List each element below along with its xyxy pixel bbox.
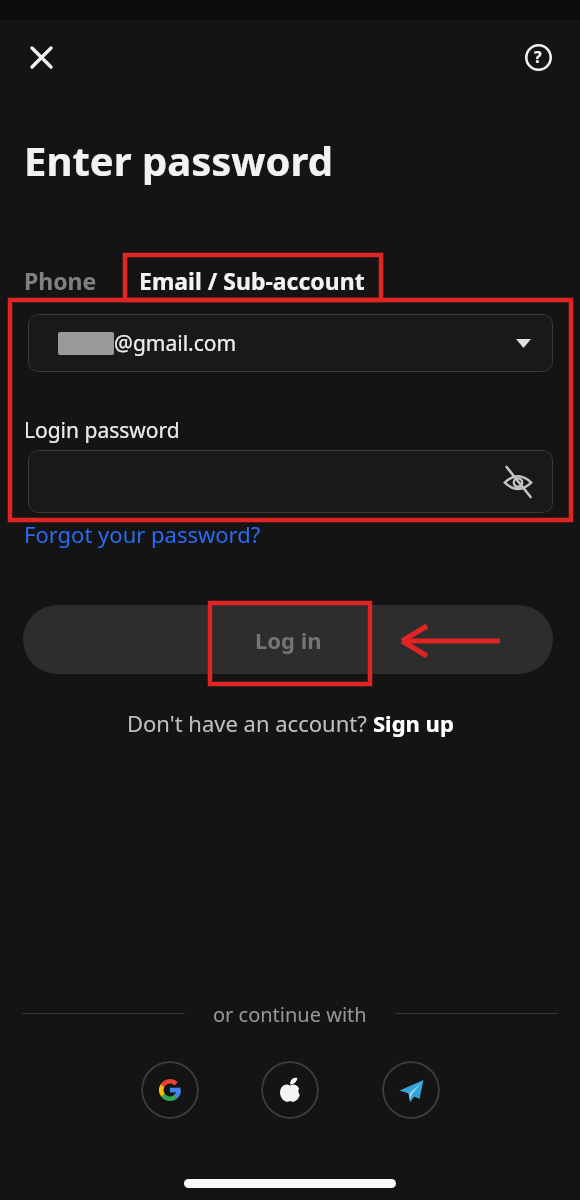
- button[interactable]: [141, 1061, 199, 1119]
- staticText: Enter password: [24, 133, 333, 187]
- staticText: @gmail.com: [114, 329, 237, 358]
- staticText: or continue with: [213, 1001, 367, 1028]
- button[interactable]: Log in: [23, 605, 553, 674]
- button[interactable]: ?: [521, 40, 555, 74]
- staticText: Log in: [255, 625, 322, 655]
- staticText: Login password: [24, 416, 180, 445]
- button[interactable]: Sign up: [373, 708, 454, 738]
- button[interactable]: Forgot your password?: [24, 519, 261, 549]
- button[interactable]: @gmail.com: [28, 314, 553, 372]
- button[interactable]: Email / Sub-account: [139, 258, 365, 302]
- staticText: Email / Sub-account: [139, 265, 365, 296]
- button[interactable]: Phone: [24, 258, 97, 302]
- staticText: Forgot your password?: [24, 519, 261, 549]
- button[interactable]: [24, 40, 58, 74]
- staticText: Don't have an account?: [127, 708, 373, 738]
- staticText: Sign up: [373, 708, 454, 738]
- button[interactable]: [261, 1061, 319, 1119]
- staticText: Phone: [24, 265, 97, 296]
- button[interactable]: [382, 1061, 440, 1119]
- staticText: ?: [534, 46, 542, 68]
- button[interactable]: [28, 450, 553, 513]
